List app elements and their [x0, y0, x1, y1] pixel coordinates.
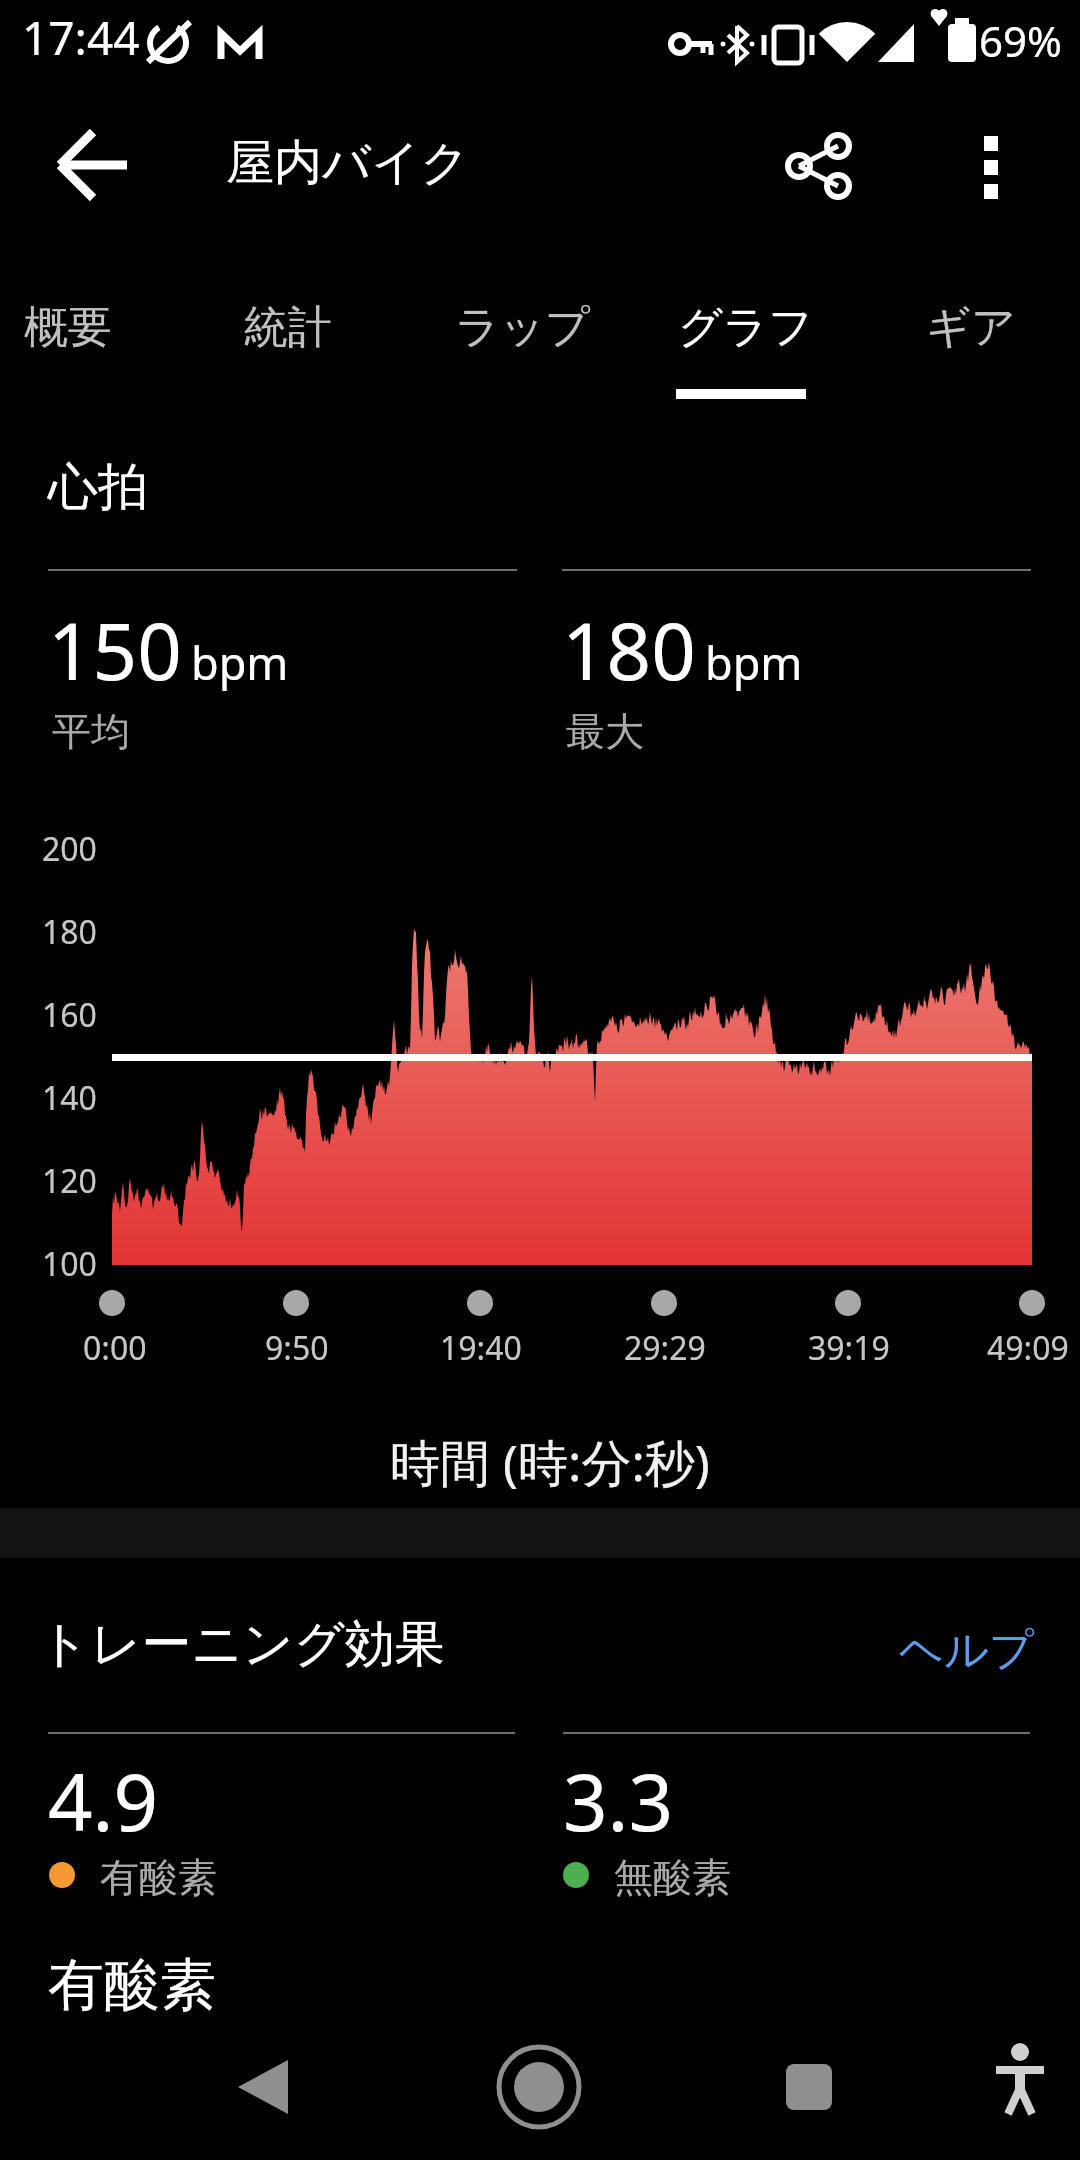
staticText: トレーニング効果 — [39, 1613, 445, 1676]
staticText: 49:09 — [987, 1326, 1069, 1370]
staticText: 最大 — [566, 707, 644, 756]
staticText: 39:19 — [808, 1326, 890, 1370]
staticText: 4.9 — [48, 1748, 159, 1854]
staticText: 時間 (時:分:秒) — [390, 1428, 710, 1496]
staticText: 平均 — [52, 707, 130, 756]
staticText: 140 — [42, 1076, 97, 1120]
staticText: 有酸素 — [100, 1853, 217, 1902]
button[interactable] — [972, 2040, 1068, 2136]
button[interactable]: ヘルプ — [899, 1623, 1035, 1678]
staticText: 180 — [562, 597, 696, 703]
staticText: 29:29 — [624, 1326, 706, 1370]
button[interactable] — [770, 117, 866, 213]
staticText: 0:00 — [83, 1326, 147, 1370]
button[interactable]: 概要 — [24, 300, 112, 355]
staticText: 19:40 — [440, 1326, 522, 1370]
staticText: 有酸素 — [48, 1950, 216, 2021]
staticText: 150 — [48, 597, 182, 703]
staticText: bpm — [191, 632, 289, 693]
staticText: 17:44 — [22, 6, 140, 69]
staticText: 100 — [42, 1242, 97, 1286]
button[interactable]: ラップ — [455, 300, 591, 355]
button[interactable] — [950, 117, 1046, 213]
button[interactable]: 統計 — [244, 300, 332, 355]
button[interactable]: グラフ — [678, 300, 814, 355]
button[interactable] — [761, 2040, 857, 2136]
staticText: 3.3 — [563, 1748, 674, 1854]
button[interactable]: ギア — [926, 300, 1017, 355]
staticText: 屋内バイク — [226, 133, 470, 193]
staticText: 120 — [42, 1159, 97, 1203]
button[interactable] — [215, 2040, 311, 2136]
button[interactable] — [40, 117, 136, 213]
staticText: bpm — [705, 632, 803, 693]
staticText: 心拍 — [48, 456, 148, 519]
staticText: 160 — [42, 993, 97, 1037]
staticText: 200 — [42, 827, 97, 871]
staticText: 180 — [42, 910, 97, 954]
staticText: 9:50 — [265, 1326, 329, 1370]
staticText: 69% — [979, 12, 1062, 69]
staticText: 無酸素 — [614, 1853, 731, 1902]
button[interactable] — [491, 2040, 587, 2136]
